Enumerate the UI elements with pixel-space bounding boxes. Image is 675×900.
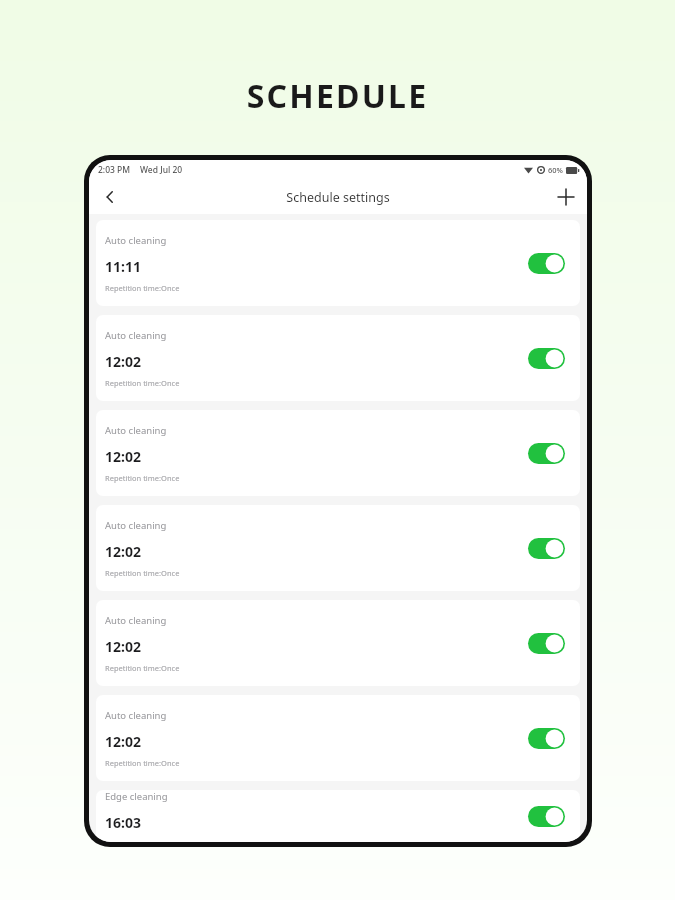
staticText: Repetition time:Once [105, 473, 180, 483]
staticText: 12:02 [105, 542, 141, 561]
button[interactable]: Enable schedule [524, 802, 568, 830]
staticText: Edge cleaning [105, 790, 168, 803]
button[interactable]: Add schedule [549, 180, 583, 214]
staticText: 12:02 [105, 637, 141, 656]
staticText: 12:02 [105, 352, 141, 371]
staticText: 16:03 [105, 813, 141, 832]
staticText: Auto cleaning [105, 329, 167, 342]
staticText: Auto cleaning [105, 709, 167, 722]
button[interactable]: Auto cleaning [96, 410, 580, 496]
staticText: Repetition time:Once [105, 378, 180, 388]
staticText: Schedule settings [286, 189, 390, 206]
staticText: Auto cleaning [105, 519, 167, 532]
button[interactable]: Auto cleaning [96, 695, 580, 781]
button[interactable]: Enable schedule [524, 629, 568, 657]
staticText: 2:03 PM [98, 164, 131, 176]
staticText: Repetition time:Once [105, 839, 180, 842]
button[interactable]: Enable schedule [524, 439, 568, 467]
staticText: Repetition time:Once [105, 758, 180, 768]
staticText: Repetition time:Once [105, 568, 180, 578]
staticText: 60% [548, 165, 563, 175]
staticText: 12:02 [105, 732, 141, 751]
staticText: SCHEDULE [0, 74, 675, 118]
button[interactable]: Enable schedule [524, 724, 568, 752]
staticText: Repetition time:Once [105, 283, 180, 293]
staticText: Auto cleaning [105, 234, 167, 247]
button[interactable]: Auto cleaning [96, 315, 580, 401]
staticText: Auto cleaning [105, 424, 167, 437]
staticText: Wed Jul 20 [140, 164, 183, 176]
button[interactable]: Edge cleaning [96, 790, 580, 842]
button[interactable]: Auto cleaning [96, 220, 580, 306]
staticText: 12:02 [105, 447, 141, 466]
button[interactable]: Auto cleaning [96, 600, 580, 686]
button[interactable]: Back [93, 180, 127, 214]
staticText: Repetition time:Once [105, 663, 180, 673]
button[interactable]: Enable schedule [524, 344, 568, 372]
staticText: Auto cleaning [105, 614, 167, 627]
button[interactable]: Enable schedule [524, 249, 568, 277]
button[interactable]: Enable schedule [524, 534, 568, 562]
staticText: 11:11 [105, 257, 141, 276]
button[interactable]: Auto cleaning [96, 505, 580, 591]
